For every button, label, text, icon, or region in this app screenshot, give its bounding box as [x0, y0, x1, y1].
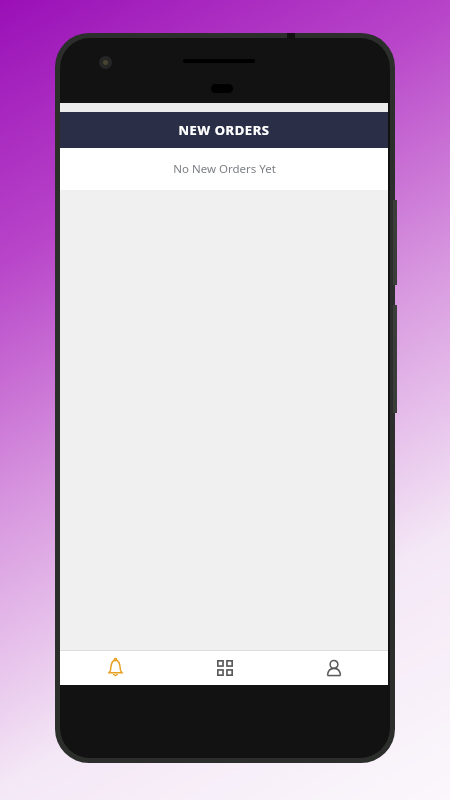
button[interactable]: Notifications: [60, 650, 170, 685]
button[interactable]: Profile: [279, 650, 388, 685]
button[interactable]: Dashboard: [170, 650, 279, 685]
staticText: NEW ORDERS: [178, 121, 270, 139]
staticText: No New Orders Yet: [173, 161, 276, 177]
